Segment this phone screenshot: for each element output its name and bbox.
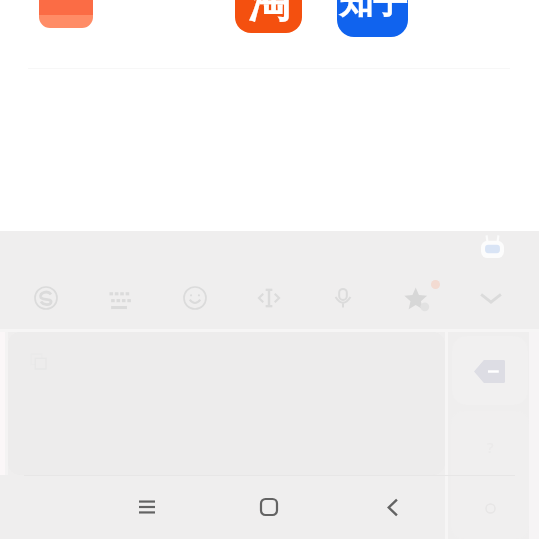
staticText: 淘 bbox=[248, 0, 290, 30]
button[interactable]: Zhihu bbox=[337, 0, 408, 37]
button[interactable]: Emoji bbox=[175, 278, 215, 318]
button[interactable]: Move cursor bbox=[249, 278, 289, 318]
button[interactable]: Home bbox=[251, 489, 287, 525]
button[interactable]: Sogou bbox=[26, 278, 66, 318]
button[interactable]: Recent apps bbox=[129, 489, 165, 525]
button[interactable]: Assistant bbox=[477, 233, 508, 264]
button[interactable]: Keyboard layout bbox=[100, 278, 140, 318]
button[interactable]: Taobao bbox=[235, 0, 302, 33]
button[interactable]: Back bbox=[374, 489, 410, 525]
button[interactable]: Themes bbox=[397, 279, 437, 319]
button[interactable]: Voice input bbox=[323, 278, 363, 318]
button[interactable]: App icon bbox=[39, 0, 93, 28]
button[interactable]: Hide keyboard bbox=[471, 278, 511, 318]
staticText: 知乎 bbox=[339, 0, 407, 23]
button[interactable]: Backspace bbox=[452, 336, 528, 405]
